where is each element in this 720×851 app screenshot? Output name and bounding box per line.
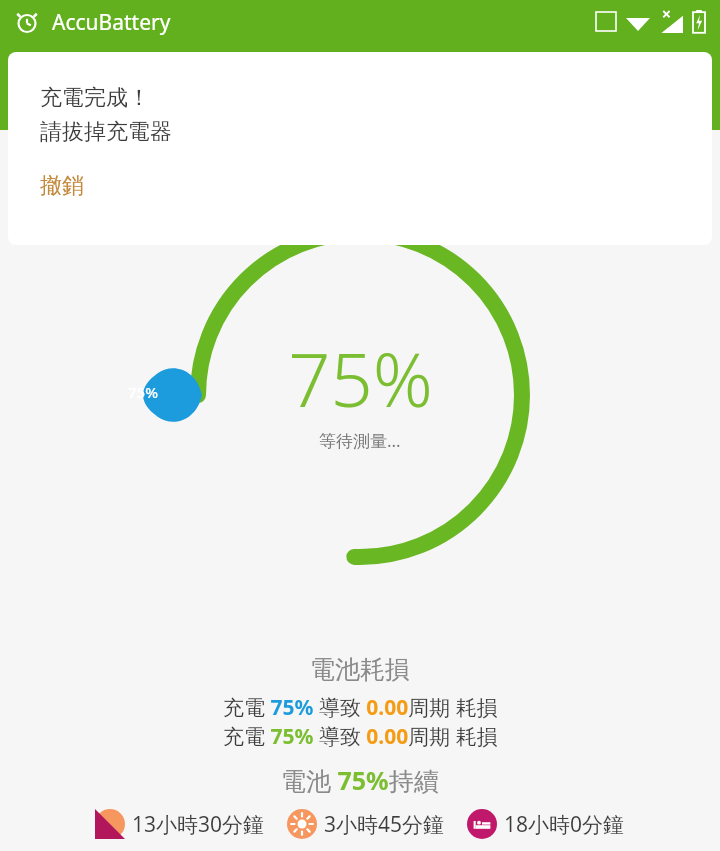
other: Screen brightness	[287, 809, 317, 839]
staticText: 撤銷	[40, 172, 84, 200]
staticText: 75%	[288, 328, 433, 429]
staticText: AccuBattery	[52, 8, 171, 37]
staticText: 充電 75% 導致 0.00周期 耗損	[223, 693, 498, 722]
button[interactable]: Alarm	[14, 9, 40, 35]
staticText: 75%	[128, 382, 158, 402]
staticText: 充電完成！	[40, 84, 150, 112]
staticText: 電池耗損	[310, 654, 410, 685]
button[interactable]: 充電完成！	[8, 52, 712, 245]
staticText: 3小時45分鐘	[324, 810, 445, 839]
button[interactable]: 撤銷	[40, 172, 84, 200]
staticText: 13小時30分鐘	[132, 810, 265, 839]
other: Screen on time	[95, 809, 125, 839]
staticText: 18小時0分鐘	[504, 810, 625, 839]
staticText: 充電 75% 導致 0.00周期 耗損	[223, 722, 498, 751]
staticText: 等待測量...	[319, 429, 401, 452]
button[interactable]: Deep sleep time	[467, 809, 625, 839]
staticText: 電池 75%持續	[281, 763, 439, 797]
other: Deep sleep time	[467, 809, 497, 839]
staticText: 請拔掉充電器	[40, 118, 172, 146]
button[interactable]: Screen on time	[95, 809, 265, 839]
button[interactable]: Screen brightness	[287, 809, 445, 839]
